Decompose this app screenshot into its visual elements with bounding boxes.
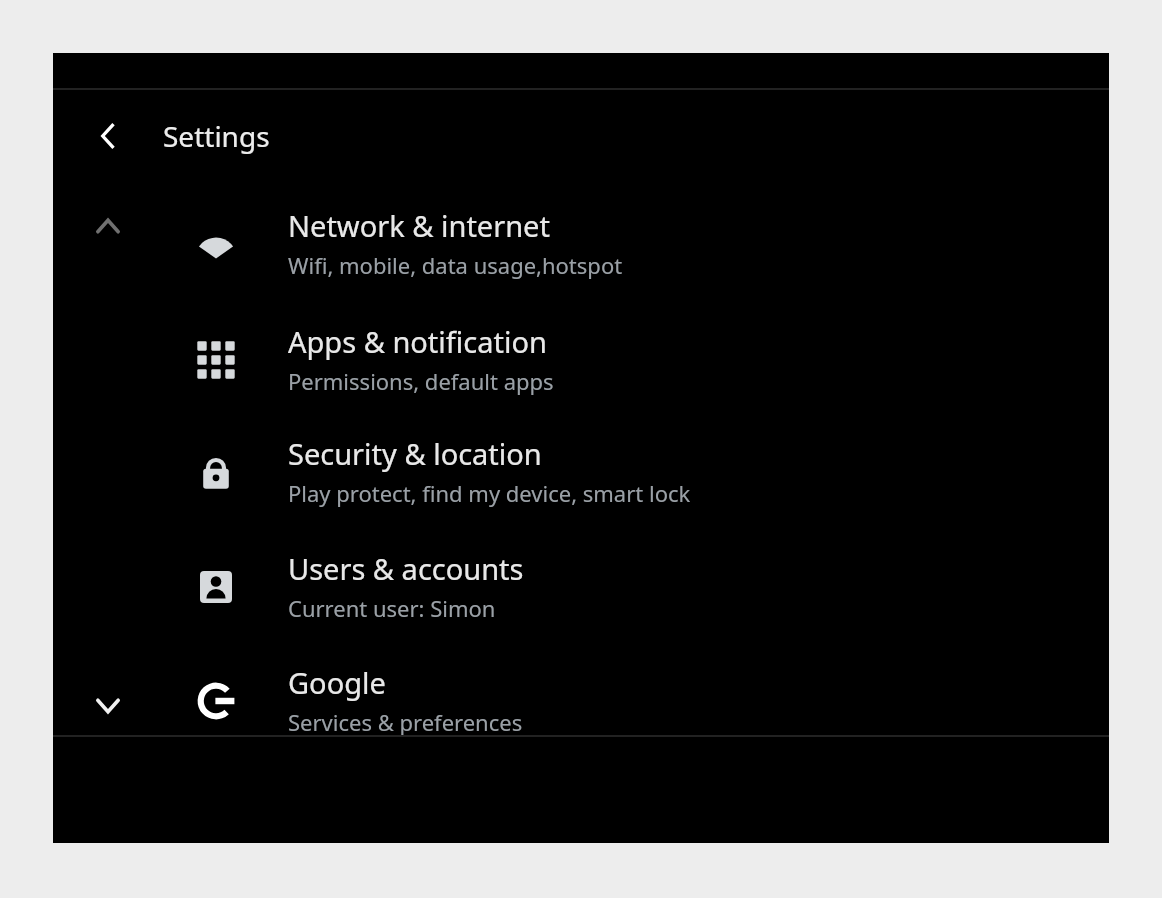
staticText: Network & internet: [288, 206, 550, 245]
button[interactable]: Apps & notification: [53, 308, 1109, 412]
button[interactable]: Network & internet: [53, 192, 1109, 296]
staticText: Apps & notification: [288, 322, 547, 361]
button[interactable]: Back: [78, 106, 138, 166]
staticText: Google: [288, 663, 386, 702]
button[interactable]: Users & accounts: [53, 535, 1109, 639]
button[interactable]: Scroll down: [80, 678, 136, 734]
staticText: Services & preferences: [288, 707, 523, 737]
staticText: Security & location: [288, 434, 542, 473]
staticText: Users & accounts: [288, 549, 524, 588]
staticText: Permissions, default apps: [288, 366, 554, 396]
button[interactable]: Scroll up: [80, 198, 136, 254]
staticText: Settings: [163, 117, 270, 155]
staticText: Play protect, find my device, smart lock: [288, 478, 691, 508]
staticText: Wifi, mobile, data usage,hotspot: [288, 250, 623, 280]
staticText: Current user: Simon: [288, 593, 496, 623]
button[interactable]: Security & location: [53, 420, 1109, 524]
button[interactable]: Google: [53, 649, 1109, 753]
